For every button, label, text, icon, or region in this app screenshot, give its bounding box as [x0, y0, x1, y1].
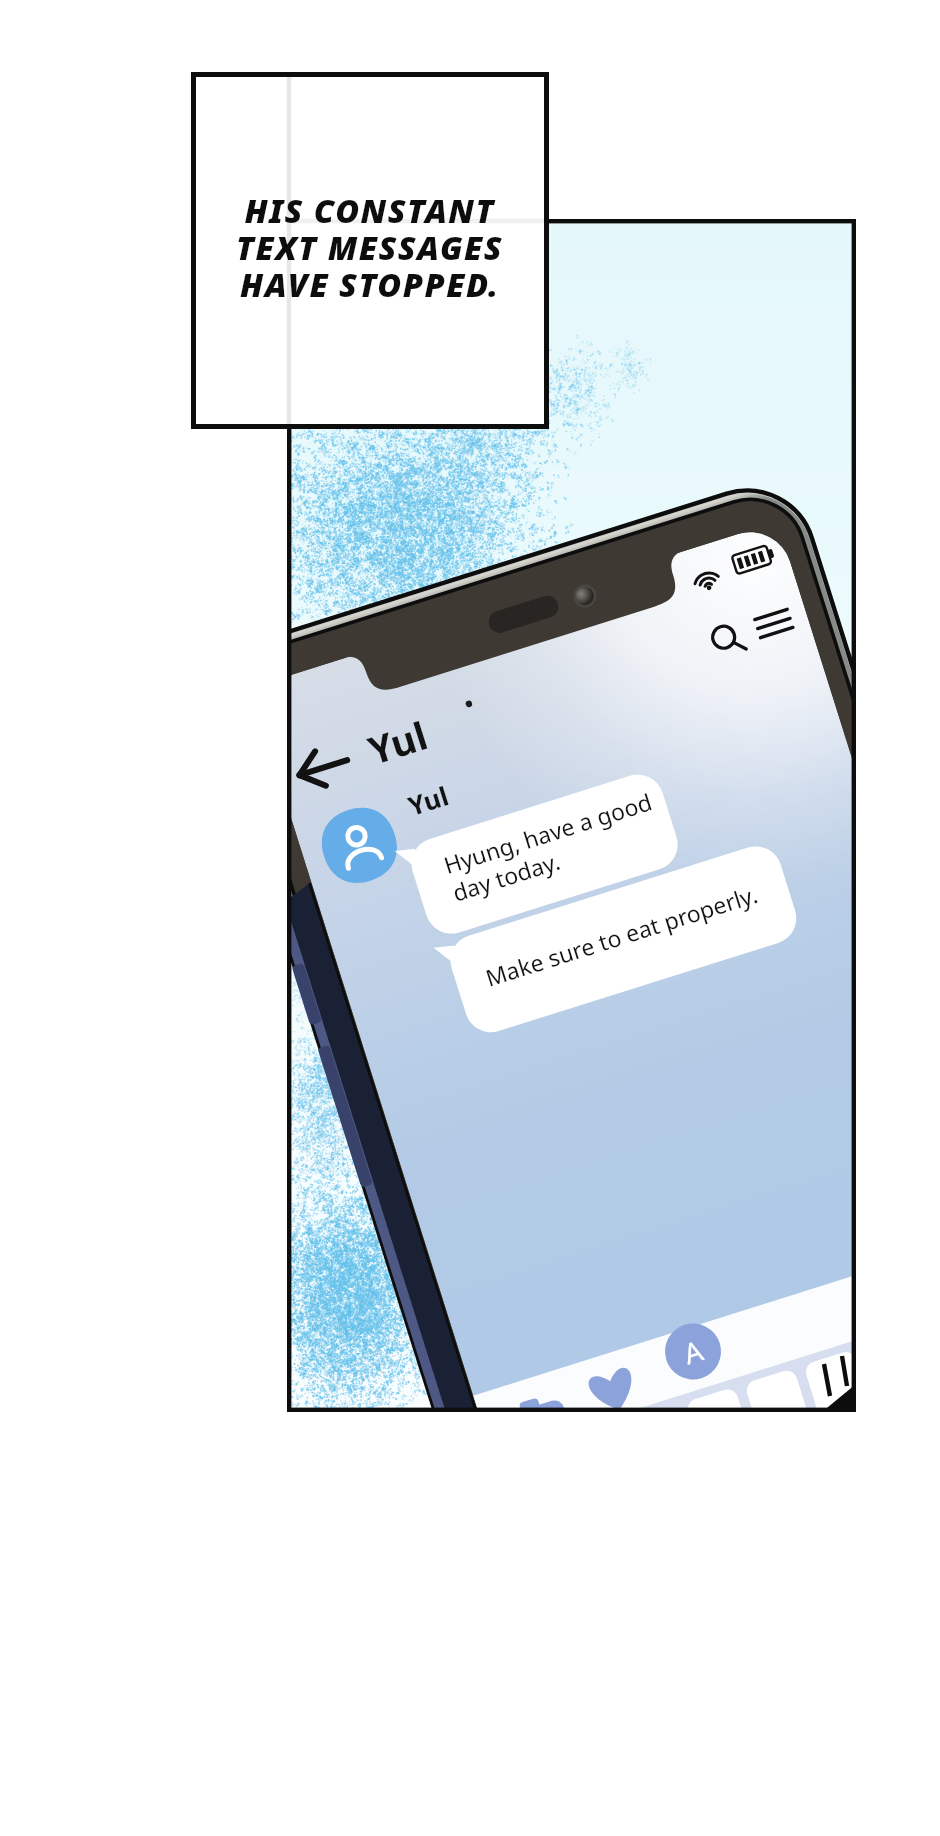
button[interactable]: Make sure to eat properly. [440, 896, 792, 1042]
button[interactable]: Menu [752, 598, 810, 648]
button[interactable]: Yul profile picture [328, 812, 392, 878]
button[interactable]: Search [700, 612, 756, 668]
button[interactable]: Camera [498, 1330, 572, 1410]
button[interactable]: Back [294, 742, 360, 802]
button[interactable]: Text style [658, 1314, 730, 1382]
button[interactable]: HIS CONSTANT TEXT MESSAGES HAVE STOPPED. [191, 72, 549, 429]
button[interactable]: Hyung, have a good day today. [402, 776, 674, 932]
button[interactable]: Sticker [574, 1334, 644, 1404]
